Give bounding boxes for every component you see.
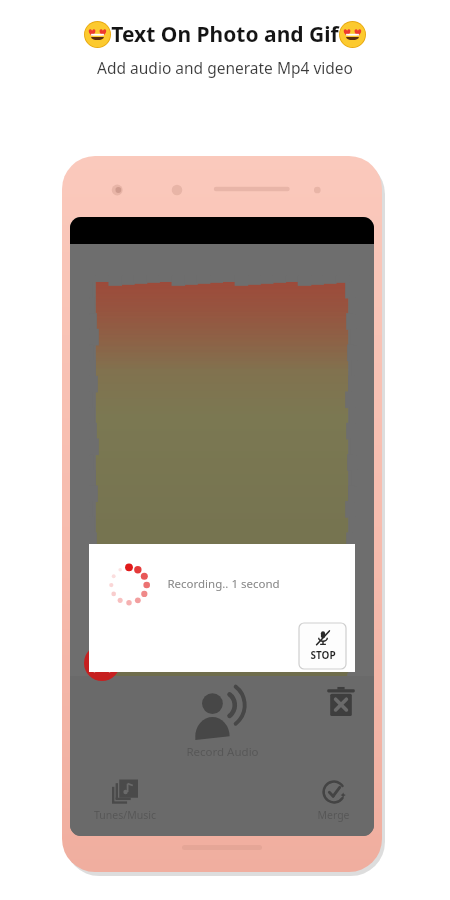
button[interactable]: STOP — [299, 623, 346, 669]
button[interactable]: Close — [84, 645, 120, 681]
staticText: Tunes/Music — [94, 808, 156, 822]
staticText: Record Audio — [186, 744, 259, 760]
button[interactable]: Tunes/Music — [94, 779, 156, 822]
button[interactable]: Record Audio — [186, 688, 259, 760]
staticText: Text On Photo and Gif — [111, 20, 339, 49]
button[interactable]: Delete audio — [326, 686, 356, 718]
staticText: Add audio and generate Mp4 video — [97, 57, 353, 78]
staticText: Recording.. 1 second — [167, 576, 280, 592]
button[interactable]: Merge — [317, 779, 350, 822]
staticText: STOP — [310, 648, 336, 662]
staticText: Merge — [317, 808, 350, 822]
